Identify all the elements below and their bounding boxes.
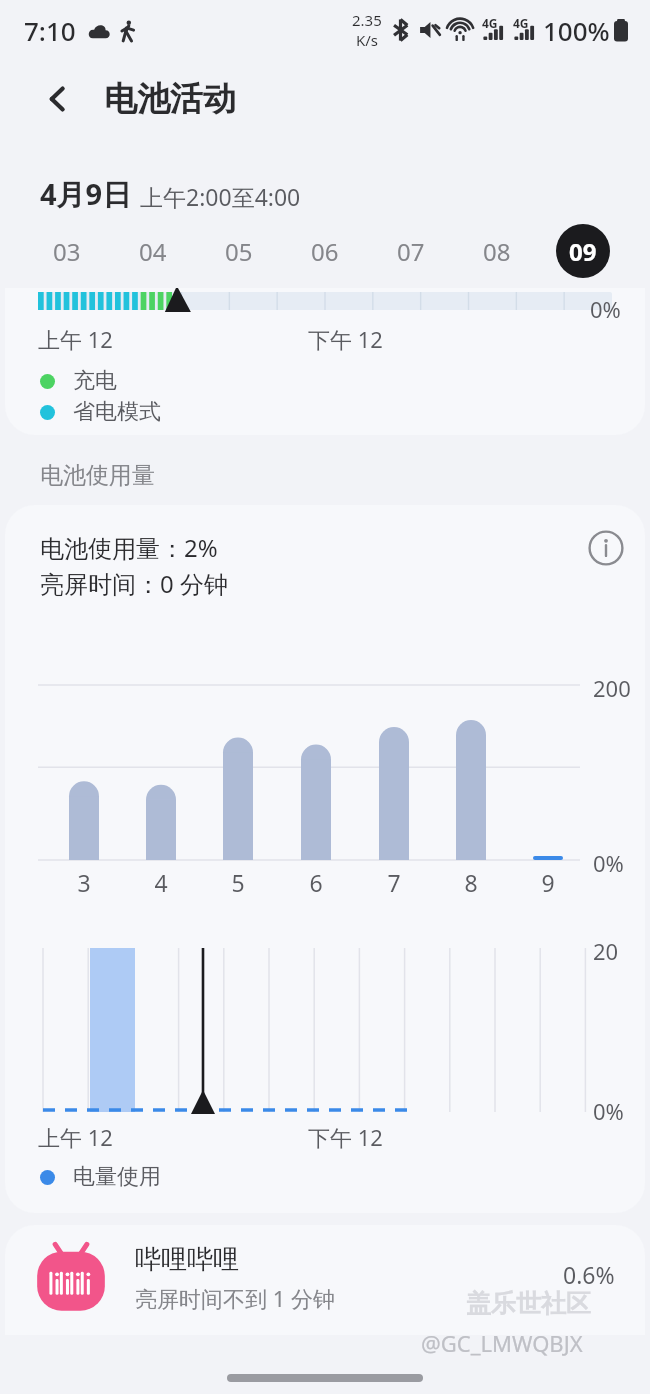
staticText: 9 — [533, 867, 563, 898]
button[interactable]: 07 — [384, 224, 438, 278]
staticText: 亮屏时间：0 分钟 — [40, 567, 228, 600]
staticText: 充电 — [73, 367, 117, 395]
button[interactable]: 06 — [298, 224, 352, 278]
staticText: 08 — [483, 235, 511, 268]
button[interactable]: 05 — [212, 224, 266, 278]
staticText: 4月9日 — [40, 174, 132, 214]
button[interactable]: Info — [583, 525, 629, 571]
button[interactable]: 08 — [470, 224, 524, 278]
staticText: 盖乐世社区 — [466, 1288, 591, 1319]
button[interactable]: 哔哩哔哩 — [5, 1225, 645, 1335]
staticText: 0.6% — [563, 1259, 615, 1290]
staticText: 5 — [223, 867, 253, 898]
staticText: 4G — [482, 15, 498, 31]
staticText: 06 — [311, 235, 339, 268]
staticText: 20 — [593, 936, 619, 966]
staticText: 0% — [590, 294, 621, 324]
staticText: 03 — [53, 235, 81, 268]
staticText: K/s — [356, 30, 379, 50]
staticText: 4 — [146, 867, 176, 898]
staticText: 04 — [139, 235, 167, 268]
button[interactable]: 04 — [126, 224, 180, 278]
staticText: 上午2:00至4:00 — [140, 181, 301, 212]
staticText: 2.35 — [352, 10, 382, 30]
staticText: 下午 12 — [308, 1122, 383, 1152]
staticText: @GC_LMWQBJX — [421, 1328, 583, 1358]
button[interactable]: 电池使用量：2% — [5, 505, 645, 1213]
button[interactable]: Back — [34, 75, 82, 123]
staticText: 电池使用量 — [40, 461, 155, 490]
staticText: 6 — [301, 867, 331, 898]
staticText: 200 — [593, 673, 631, 703]
staticText: 7:10 — [24, 13, 76, 48]
button[interactable]: 09 — [556, 224, 610, 278]
staticText: 0% — [593, 848, 624, 878]
staticText: 电量使用 — [73, 1163, 161, 1191]
staticText: 100% — [543, 13, 610, 48]
staticText: 09 — [569, 235, 597, 268]
button[interactable]: 03 — [40, 224, 94, 278]
staticText: 下午 12 — [308, 324, 383, 354]
staticText: 3 — [69, 867, 99, 898]
staticText: 7 — [379, 867, 409, 898]
staticText: 省电模式 — [73, 398, 161, 426]
staticText: 电池活动 — [104, 78, 236, 120]
staticText: 上午 12 — [38, 1122, 113, 1152]
staticText: 亮屏时间不到 1 分钟 — [135, 1283, 336, 1313]
staticText: 0% — [593, 1096, 624, 1126]
staticText: 哔哩哔哩 — [135, 1243, 239, 1276]
staticText: 07 — [397, 235, 425, 268]
staticText: 电池使用量：2% — [40, 531, 218, 564]
staticText: 上午 12 — [38, 324, 113, 354]
staticText: 8 — [456, 867, 486, 898]
staticText: 05 — [225, 235, 253, 268]
staticText: 4G — [513, 15, 529, 31]
